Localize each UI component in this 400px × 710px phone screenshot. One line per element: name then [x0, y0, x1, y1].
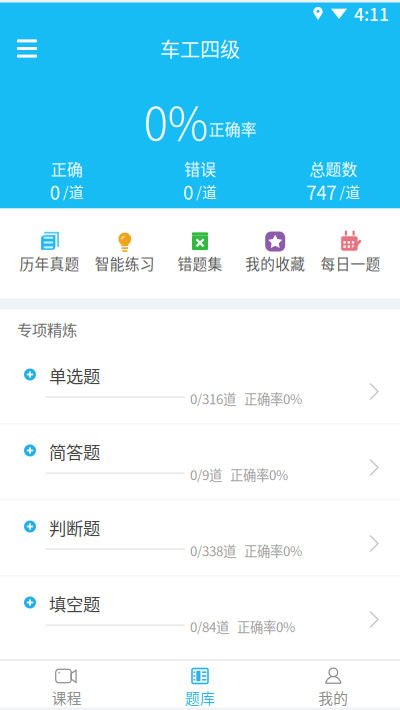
button[interactable]: 判断题 [0, 500, 400, 575]
button[interactable]: 简答题 [0, 424, 400, 499]
staticText: 我的收藏 [245, 252, 305, 274]
staticText: 专项精炼 [17, 318, 77, 340]
button[interactable]: 填空题 [0, 576, 400, 651]
button[interactable]: 智能练习 [87, 220, 162, 280]
button[interactable]: 我的收藏 [238, 220, 313, 280]
staticText: /道 [336, 181, 360, 202]
staticText: 课程 [52, 687, 82, 708]
staticText: 0 [50, 178, 60, 205]
staticText: 0% [143, 88, 208, 153]
staticText: 历年真题 [20, 252, 80, 274]
button[interactable]: 每日一题 [313, 220, 388, 280]
staticText: 我的 [318, 687, 348, 708]
staticText: 简答题 [49, 439, 100, 464]
staticText: 正确率0% [244, 541, 302, 560]
staticText: 正确率 [208, 117, 256, 140]
staticText: 747 [306, 178, 336, 205]
staticText: 0/9道 [190, 465, 222, 484]
staticText: 0/84道 [190, 617, 229, 636]
staticText: 智能练习 [95, 252, 155, 274]
button[interactable]: 单选题 [0, 348, 400, 423]
staticText: 4:11 [354, 1, 389, 26]
button[interactable]: Menu [0, 26, 54, 70]
staticText: 正确率0% [237, 617, 295, 636]
staticText: 错题集 [177, 252, 222, 274]
button[interactable]: 题库 [133, 660, 267, 707]
staticText: 每日一题 [320, 252, 380, 274]
button[interactable]: 错题集 [162, 220, 238, 280]
staticText: 题库 [185, 687, 215, 708]
button[interactable]: 历年真题 [12, 220, 87, 280]
staticText: 0/338道 [190, 541, 236, 560]
staticText: 单选题 [49, 363, 100, 388]
staticText: 0 [183, 178, 193, 205]
button[interactable]: 我的 [267, 660, 400, 707]
staticText: /道 [60, 181, 84, 202]
staticText: 判断题 [49, 515, 100, 540]
staticText: /道 [193, 181, 217, 202]
staticText: 正确率0% [230, 465, 288, 484]
staticText: 错误 [184, 157, 216, 180]
staticText: 填空题 [49, 591, 100, 616]
staticText: 正确 [51, 157, 83, 180]
staticText: 车工四级 [160, 34, 240, 63]
button[interactable]: 课程 [0, 660, 133, 707]
staticText: 0/316道 [190, 389, 236, 408]
staticText: 正确率0% [244, 389, 302, 408]
staticText: 总题数 [309, 157, 357, 180]
